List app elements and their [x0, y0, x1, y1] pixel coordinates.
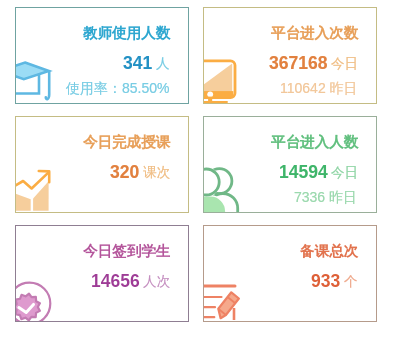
staticText: 平台进入次数 [271, 24, 358, 42]
button[interactable]: 今日完成授课 [15, 116, 189, 213]
staticText: 人次 [143, 273, 170, 290]
button[interactable]: 今日签到学生 [15, 225, 189, 322]
staticText: 人 [156, 55, 170, 72]
button[interactable]: 教师使用人数 [15, 7, 189, 104]
staticText: 7336 昨日 [294, 189, 358, 207]
staticText: 今日签到学生 [83, 242, 170, 260]
staticText: 933 [311, 271, 341, 291]
staticText: 110642 昨日 [280, 80, 358, 98]
staticText: 14656 [91, 271, 140, 291]
button[interactable]: 备课总次 [203, 225, 377, 322]
staticText: 使用率：85.50% [66, 80, 170, 98]
staticText: 平台进入人数 [271, 133, 358, 151]
staticText: 341 [123, 53, 153, 73]
button[interactable]: 平台进入人数 [203, 116, 377, 213]
button[interactable]: 平台进入次数 [203, 7, 377, 104]
staticText: 备课总次 [300, 242, 358, 260]
staticText: 今日 [331, 55, 358, 72]
staticText: 今日 [331, 164, 358, 181]
staticText: 320 [110, 162, 140, 182]
staticText: 课次 [143, 164, 170, 181]
staticText: 14594 [279, 162, 328, 182]
staticText: 教师使用人数 [83, 24, 170, 42]
staticText: 367168 [269, 53, 328, 73]
staticText: 今日完成授课 [83, 133, 170, 151]
staticText: 个 [344, 273, 358, 290]
